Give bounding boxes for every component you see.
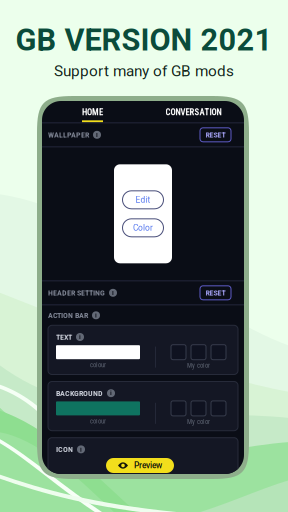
staticText: TEXT bbox=[56, 332, 72, 342]
staticText: ACTION BAR bbox=[48, 311, 88, 320]
button[interactable]: Preview bbox=[106, 458, 174, 473]
staticText: Support many of GB mods bbox=[54, 62, 234, 80]
button[interactable]: My color 3 bbox=[211, 401, 226, 416]
staticText: i bbox=[96, 131, 98, 139]
staticText: HEADER SETTING bbox=[48, 288, 105, 297]
staticText: RESET bbox=[205, 130, 225, 139]
staticText: i bbox=[112, 289, 114, 297]
button[interactable]: RESET bbox=[200, 286, 231, 300]
staticText: colour bbox=[90, 417, 106, 425]
staticText: Preview bbox=[134, 461, 162, 470]
staticText: My color bbox=[187, 362, 210, 369]
staticText: WALLPAPER bbox=[48, 130, 89, 139]
staticText: BACKGROUND bbox=[56, 388, 103, 398]
button[interactable]: My color 1 bbox=[171, 345, 186, 360]
staticText: CONVERSATION bbox=[165, 107, 221, 117]
staticText: ICON bbox=[56, 445, 73, 454]
staticText: GB VERSION 2021 bbox=[15, 22, 272, 58]
button[interactable]: HOME bbox=[42, 93, 143, 122]
staticText: HOME bbox=[82, 107, 103, 117]
staticText: i bbox=[95, 311, 97, 319]
staticText: RESET bbox=[205, 288, 225, 297]
button[interactable]: My color 3 bbox=[211, 345, 226, 360]
staticText: colour bbox=[90, 361, 106, 369]
staticText: Color bbox=[133, 223, 153, 233]
button[interactable]: BACKGROUND colour bbox=[56, 401, 140, 415]
button[interactable]: TEXT colour bbox=[56, 345, 140, 359]
button[interactable]: Color bbox=[122, 219, 163, 237]
button[interactable]: CONVERSATION bbox=[143, 93, 244, 122]
staticText: Edit bbox=[135, 195, 150, 205]
staticText: i bbox=[79, 333, 81, 341]
button[interactable]: RESET bbox=[200, 128, 231, 142]
button[interactable]: Edit bbox=[122, 191, 163, 209]
staticText: i bbox=[110, 389, 112, 397]
staticText: i bbox=[80, 445, 82, 453]
button[interactable]: My color 2 bbox=[191, 345, 206, 360]
button[interactable]: My color 2 bbox=[191, 401, 206, 416]
staticText: My color bbox=[187, 418, 210, 426]
button[interactable]: My color 1 bbox=[171, 401, 186, 416]
